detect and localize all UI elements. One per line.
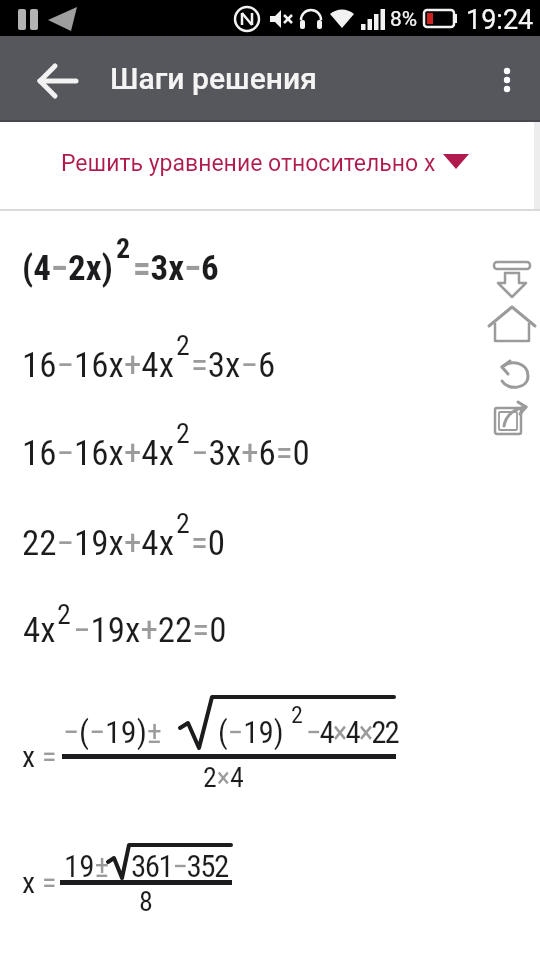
staticText: x = [22, 739, 57, 774]
staticText: 2 [176, 329, 190, 362]
staticText: 2×4 [203, 761, 244, 794]
staticText: 22−19x+4x [22, 523, 175, 564]
staticText: 2 [176, 417, 190, 450]
staticText: 2 [291, 701, 303, 729]
staticText: =3x−6 [133, 248, 219, 289]
staticText: x = [22, 865, 57, 900]
staticText: 4x [23, 610, 56, 651]
staticText: −19x+22=0 [73, 610, 227, 651]
button[interactable] [486, 302, 538, 346]
staticText: −3x+6=0 [191, 433, 310, 474]
staticText: =0 [191, 523, 226, 564]
staticText: 16−16x+4x [22, 345, 175, 386]
button[interactable] [24, 62, 78, 98]
staticText: 361−352 [131, 848, 228, 884]
button[interactable] [489, 53, 525, 107]
staticText: =3x−6 [191, 345, 276, 386]
staticText: −4×4×22 [306, 714, 398, 750]
staticText: 2 [57, 598, 71, 631]
button[interactable] [492, 355, 536, 397]
staticText: −(−19)± [63, 713, 162, 751]
staticText: 2 [176, 507, 190, 540]
staticText: 16−16x+4x [22, 433, 175, 474]
staticText: (−19) [218, 714, 284, 750]
staticText: (4−2x) [22, 248, 113, 289]
button[interactable] [488, 256, 536, 302]
staticText: 19± [64, 848, 110, 884]
staticText: 8 [139, 885, 153, 918]
staticText: Решить уравнение относительно x [61, 150, 436, 177]
staticText: 8% [390, 7, 418, 32]
staticText: 19:24 [466, 4, 534, 36]
staticText: Шаги решения [110, 61, 317, 96]
button[interactable] [490, 398, 536, 442]
button[interactable] [40, 128, 490, 192]
staticText: 2 [116, 232, 131, 265]
